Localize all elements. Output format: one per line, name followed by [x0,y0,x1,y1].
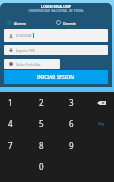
staticText: 0 [39,161,44,172]
button[interactable]: Alumno [7,20,27,25]
button[interactable]: 8 [26,135,56,156]
staticText: Sig. [98,121,105,126]
button[interactable]: 2 [26,92,56,113]
button[interactable]: 3 [56,92,86,113]
staticText: . [100,163,102,171]
staticText: INICIAR SESION [37,74,75,81]
staticText: - [100,142,102,150]
button[interactable]: 0 [26,156,56,177]
staticText: LOGIN SIGA-UNP [0,4,112,9]
button[interactable]: 1 [0,92,25,113]
staticText: Ingrese PIN [16,48,35,53]
button[interactable]: Select Fech Nac [4,59,60,69]
staticText: 1 [8,97,13,108]
button[interactable]: Backspace [86,92,114,113]
staticText: 4 [8,118,13,129]
staticText: UNIVERSIDAD NACIONAL DE PIURA [0,8,112,12]
button[interactable]: 6 [56,113,86,134]
staticText: 5 [39,118,44,129]
button[interactable]: Ingrese PIN [4,45,108,55]
staticText: 2 [39,97,44,108]
staticText: 7 [8,140,13,151]
staticText: 9 [69,140,74,151]
button[interactable]: INICIAR SESION [4,70,108,84]
staticText: 3 [69,97,74,108]
staticText: 01020304 [16,33,32,38]
button[interactable]: 4 [0,113,25,134]
button[interactable]: Docente [56,20,76,25]
button[interactable]: 9 [56,135,86,156]
staticText: 6 [69,118,74,129]
staticText: Alumno [14,21,27,25]
staticText: Docente [63,21,76,25]
button[interactable]: 5 [26,113,56,134]
staticText: 8 [39,140,44,151]
button[interactable]: 7 [0,135,25,156]
staticText: Select Fech Nac [16,62,41,67]
button[interactable]: Siguiente [86,113,114,134]
button[interactable]: 01020304 [4,29,108,42]
